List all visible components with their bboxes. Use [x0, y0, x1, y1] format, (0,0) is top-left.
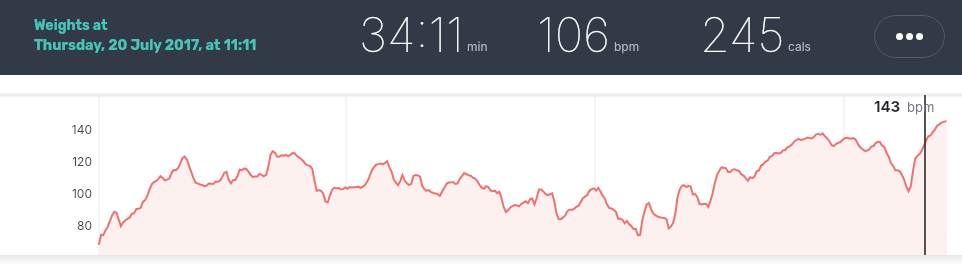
- staticText: bpm: [614, 39, 640, 54]
- staticText: 143: [874, 97, 901, 115]
- staticText: cals: [788, 39, 811, 54]
- staticText: Thursday, 20 July 2017, at 11:11: [34, 37, 257, 54]
- button[interactable]: 245: [700, 5, 811, 63]
- staticText: 80: [55, 218, 92, 233]
- staticText: 245: [700, 5, 785, 63]
- button[interactable]: More options: [874, 15, 945, 58]
- button[interactable]: 106: [537, 5, 640, 63]
- button[interactable]: Weights at: [34, 17, 274, 54]
- staticText: 140: [55, 122, 92, 137]
- button[interactable]: 34:11: [359, 5, 488, 63]
- staticText: bpm: [907, 99, 935, 115]
- staticText: 120: [55, 154, 92, 169]
- staticText: 34:11: [359, 5, 464, 63]
- staticText: 100: [55, 186, 92, 201]
- staticText: Weights at: [34, 17, 108, 34]
- staticText: min: [467, 39, 488, 54]
- staticText: 106: [537, 5, 611, 63]
